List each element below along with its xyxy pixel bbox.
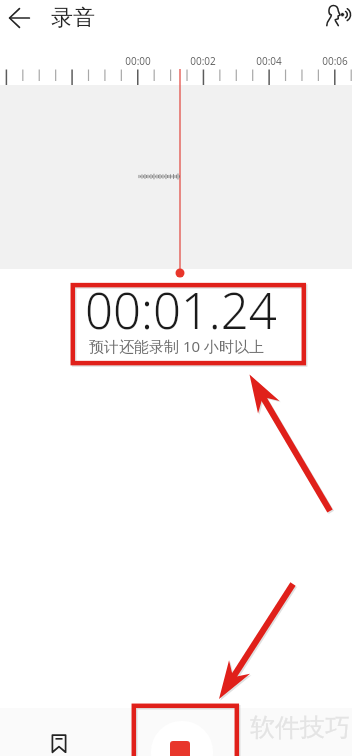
button[interactable]: Voice recognition [318,0,352,32]
button[interactable]: Stop recording [151,721,213,756]
staticText: 00:01.24 [85,277,277,344]
staticText: 00:06 [322,54,348,68]
staticText: 录音 [51,4,95,32]
staticText: 预计还能录制 10 小时以上 [89,336,264,356]
button[interactable]: Back [1,0,37,36]
staticText: 00:00 [125,54,151,68]
staticText: 00:04 [256,54,282,68]
staticText: 00:02 [190,54,216,68]
staticText: 软件技巧 [250,712,350,743]
button[interactable]: Add mark [36,720,81,756]
